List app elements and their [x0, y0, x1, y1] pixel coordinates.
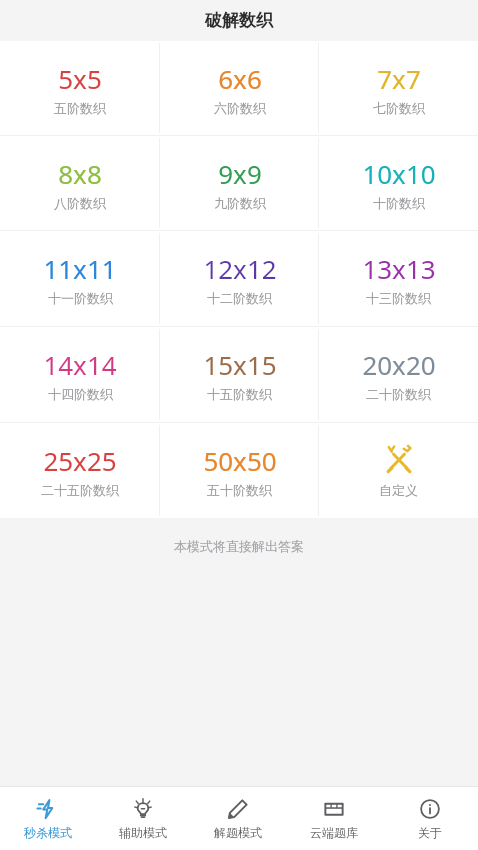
button[interactable]: 10x10	[319, 136, 478, 230]
staticText: 11x11	[43, 251, 117, 286]
staticText: 二十阶数织	[366, 386, 431, 402]
button[interactable]: 50x50	[160, 423, 319, 518]
button[interactable]: 9x9	[160, 136, 319, 230]
staticText: 十三阶数织	[366, 290, 431, 306]
staticText: 九阶数织	[214, 195, 266, 211]
staticText: 秒杀模式	[24, 825, 72, 840]
button[interactable]: 15x15	[160, 327, 319, 422]
staticText: 十二阶数织	[207, 290, 272, 306]
staticText: 五十阶数织	[207, 482, 272, 498]
staticText: 8x8	[58, 156, 102, 191]
staticText: 13x13	[362, 251, 436, 286]
button[interactable]: 25x25	[0, 423, 160, 518]
staticText: 14x14	[43, 347, 117, 382]
staticText: 七阶数织	[373, 100, 425, 116]
staticText: 八阶数织	[54, 195, 106, 211]
staticText: 5x5	[58, 61, 102, 96]
button[interactable]: 14x14	[0, 327, 160, 422]
button[interactable]: 11x11	[0, 231, 160, 326]
staticText: 6x6	[218, 61, 262, 96]
button[interactable]: 5x5	[0, 41, 160, 135]
staticText: 25x25	[43, 443, 117, 478]
button[interactable]: 12x12	[160, 231, 319, 326]
staticText: 十四阶数织	[48, 386, 113, 402]
button[interactable]: 秒杀模式	[0, 787, 95, 850]
staticText: 五阶数织	[54, 100, 106, 116]
staticText: 50x50	[203, 443, 277, 478]
staticText: 自定义	[379, 482, 418, 498]
button[interactable]: 8x8	[0, 136, 160, 230]
staticText: 十五阶数织	[207, 386, 272, 402]
button[interactable]: 20x20	[319, 327, 478, 422]
staticText: 10x10	[362, 156, 436, 191]
staticText: 云端题库	[310, 825, 358, 840]
staticText: 15x15	[203, 347, 277, 382]
button[interactable]: 解题模式	[190, 787, 286, 850]
button[interactable]: 关于	[382, 787, 478, 850]
button[interactable]: 7x7	[319, 41, 478, 135]
button[interactable]: 13x13	[319, 231, 478, 326]
staticText: 六阶数织	[214, 100, 266, 116]
staticText: 7x7	[377, 61, 421, 96]
button[interactable]: 自定义	[319, 423, 478, 518]
staticText: 12x12	[203, 251, 277, 286]
staticText: 二十五阶数织	[41, 482, 119, 498]
staticText: 9x9	[218, 156, 262, 191]
staticText: 解题模式	[214, 825, 262, 840]
staticText: 辅助模式	[119, 825, 167, 840]
staticText: 关于	[418, 825, 442, 840]
button[interactable]: 6x6	[160, 41, 319, 135]
staticText: 20x20	[362, 347, 436, 382]
staticText: 十一阶数织	[48, 290, 113, 306]
staticText: 破解数织	[205, 10, 273, 31]
staticText: 十阶数织	[373, 195, 425, 211]
button[interactable]: 云端题库	[286, 787, 382, 850]
staticText: 本模式将直接解出答案	[174, 538, 304, 554]
button[interactable]: 辅助模式	[95, 787, 190, 850]
